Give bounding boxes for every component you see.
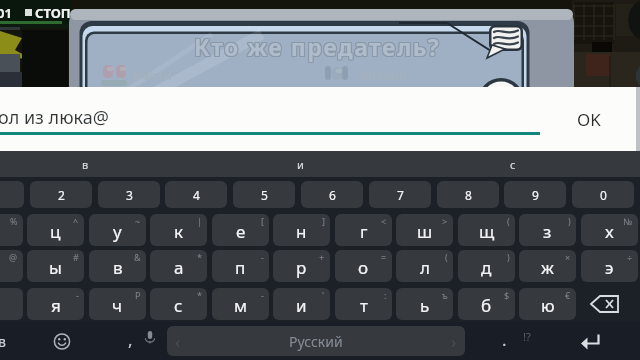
button[interactable]: 3 <box>98 181 160 208</box>
staticText: 01 <box>0 4 12 22</box>
staticText: б <box>481 294 492 317</box>
button[interactable]: т <box>335 288 392 320</box>
button[interactable]: й <box>0 214 23 246</box>
staticText: 5 <box>261 187 268 203</box>
button[interactable]: щ <box>458 214 515 246</box>
button[interactable]: в <box>89 250 146 282</box>
button[interactable]: н <box>273 214 330 246</box>
staticText: OK <box>577 108 601 131</box>
staticText: о <box>358 256 369 279</box>
button[interactable]: Emoji <box>45 326 79 356</box>
staticText: ч <box>112 294 123 317</box>
button[interactable]: в <box>65 151 105 177</box>
button[interactable]: п <box>212 250 269 282</box>
button[interactable]: о <box>335 250 392 282</box>
staticText: , <box>128 328 133 351</box>
staticText: н <box>296 220 307 243</box>
button[interactable]: ф <box>0 250 23 282</box>
staticText: 4 <box>193 187 200 203</box>
staticText: - <box>76 289 79 301</box>
button[interactable]: ы <box>27 250 84 282</box>
button[interactable]: у <box>89 214 146 246</box>
staticText: з <box>543 220 552 243</box>
staticText: 0 <box>600 187 607 203</box>
button[interactable]: я <box>27 288 84 320</box>
button[interactable]: с <box>493 151 533 177</box>
button[interactable]: а <box>150 250 207 282</box>
button[interactable]: г <box>335 214 392 246</box>
button[interactable]: в <box>0 326 18 356</box>
button[interactable]: Backspace <box>573 288 637 320</box>
staticText: ] <box>322 215 325 227</box>
staticText: ) <box>507 251 510 263</box>
button[interactable]: 7 <box>369 181 431 208</box>
button[interactable]: з <box>519 214 576 246</box>
button[interactable]: ь <box>396 288 453 320</box>
staticText: 7 <box>397 187 404 203</box>
button[interactable]: и <box>280 151 320 177</box>
button[interactable]: 9 <box>504 181 566 208</box>
button[interactable]: р <box>273 250 330 282</box>
button[interactable]: 8 <box>437 181 499 208</box>
staticText: : <box>384 289 387 301</box>
button[interactable]: м <box>212 288 269 320</box>
button[interactable]: OK <box>546 87 632 151</box>
button[interactable]: 4 <box>165 181 227 208</box>
staticText: ц <box>50 220 61 243</box>
button[interactable]: э <box>581 250 638 282</box>
staticText: э <box>605 256 614 279</box>
button[interactable]: , <box>116 326 144 356</box>
staticText: [ <box>261 215 264 227</box>
button[interactable]: с <box>150 288 207 320</box>
staticText: д <box>481 256 492 279</box>
button[interactable]: 5 <box>233 181 295 208</box>
staticText: СТОП <box>35 4 71 22</box>
staticText: а <box>174 256 184 279</box>
staticText: л <box>420 256 430 279</box>
staticText: - <box>261 289 264 301</box>
button[interactable]: Enter <box>567 326 611 358</box>
button[interactable]: е <box>212 214 269 246</box>
staticText: ы <box>49 256 62 279</box>
button[interactable]: 6 <box>301 181 363 208</box>
staticText: ь <box>420 294 430 317</box>
staticText: 2 <box>58 187 65 203</box>
button[interactable]: ш <box>396 214 453 246</box>
staticText: ÷ <box>627 251 633 263</box>
staticText: 8 <box>465 187 472 203</box>
staticText: ю <box>541 294 555 317</box>
staticText: е <box>236 220 246 243</box>
button[interactable]: д <box>458 250 515 282</box>
button[interactable]: 1 <box>0 181 24 208</box>
button[interactable]: Voice input <box>136 322 164 352</box>
staticText: с <box>510 157 516 172</box>
button[interactable]: к <box>150 214 207 246</box>
button[interactable]: Русский <box>167 326 465 356</box>
staticText: п <box>235 256 246 279</box>
button[interactable]: ч <box>89 288 146 320</box>
staticText: я <box>51 294 61 317</box>
staticText: Кто же предатель? <box>193 30 440 61</box>
button[interactable]: х <box>581 214 638 246</box>
staticText: @ <box>9 251 18 263</box>
button[interactable]: 0 <box>572 181 634 208</box>
staticText: + <box>319 251 325 263</box>
button[interactable]: л <box>396 250 453 282</box>
staticText: - <box>261 251 264 263</box>
button[interactable]: ц <box>27 214 84 246</box>
button[interactable]: . <box>490 326 518 356</box>
staticText: Кто же предатель? <box>195 31 442 62</box>
button[interactable]: ю <box>519 288 576 320</box>
staticText: ‹ <box>175 330 181 353</box>
staticText: = <box>381 251 387 263</box>
button[interactable]: б <box>458 288 515 320</box>
button[interactable]: !? <box>513 322 541 350</box>
staticText: < <box>381 215 387 227</box>
button[interactable]: 2 <box>30 181 92 208</box>
staticText: Кто же предатель? <box>195 30 442 61</box>
button[interactable]: и <box>273 288 330 320</box>
staticText: 9 <box>532 187 539 203</box>
staticText: * <box>197 289 202 301</box>
button[interactable]: ж <box>519 250 576 282</box>
button[interactable]: ё <box>0 288 23 320</box>
